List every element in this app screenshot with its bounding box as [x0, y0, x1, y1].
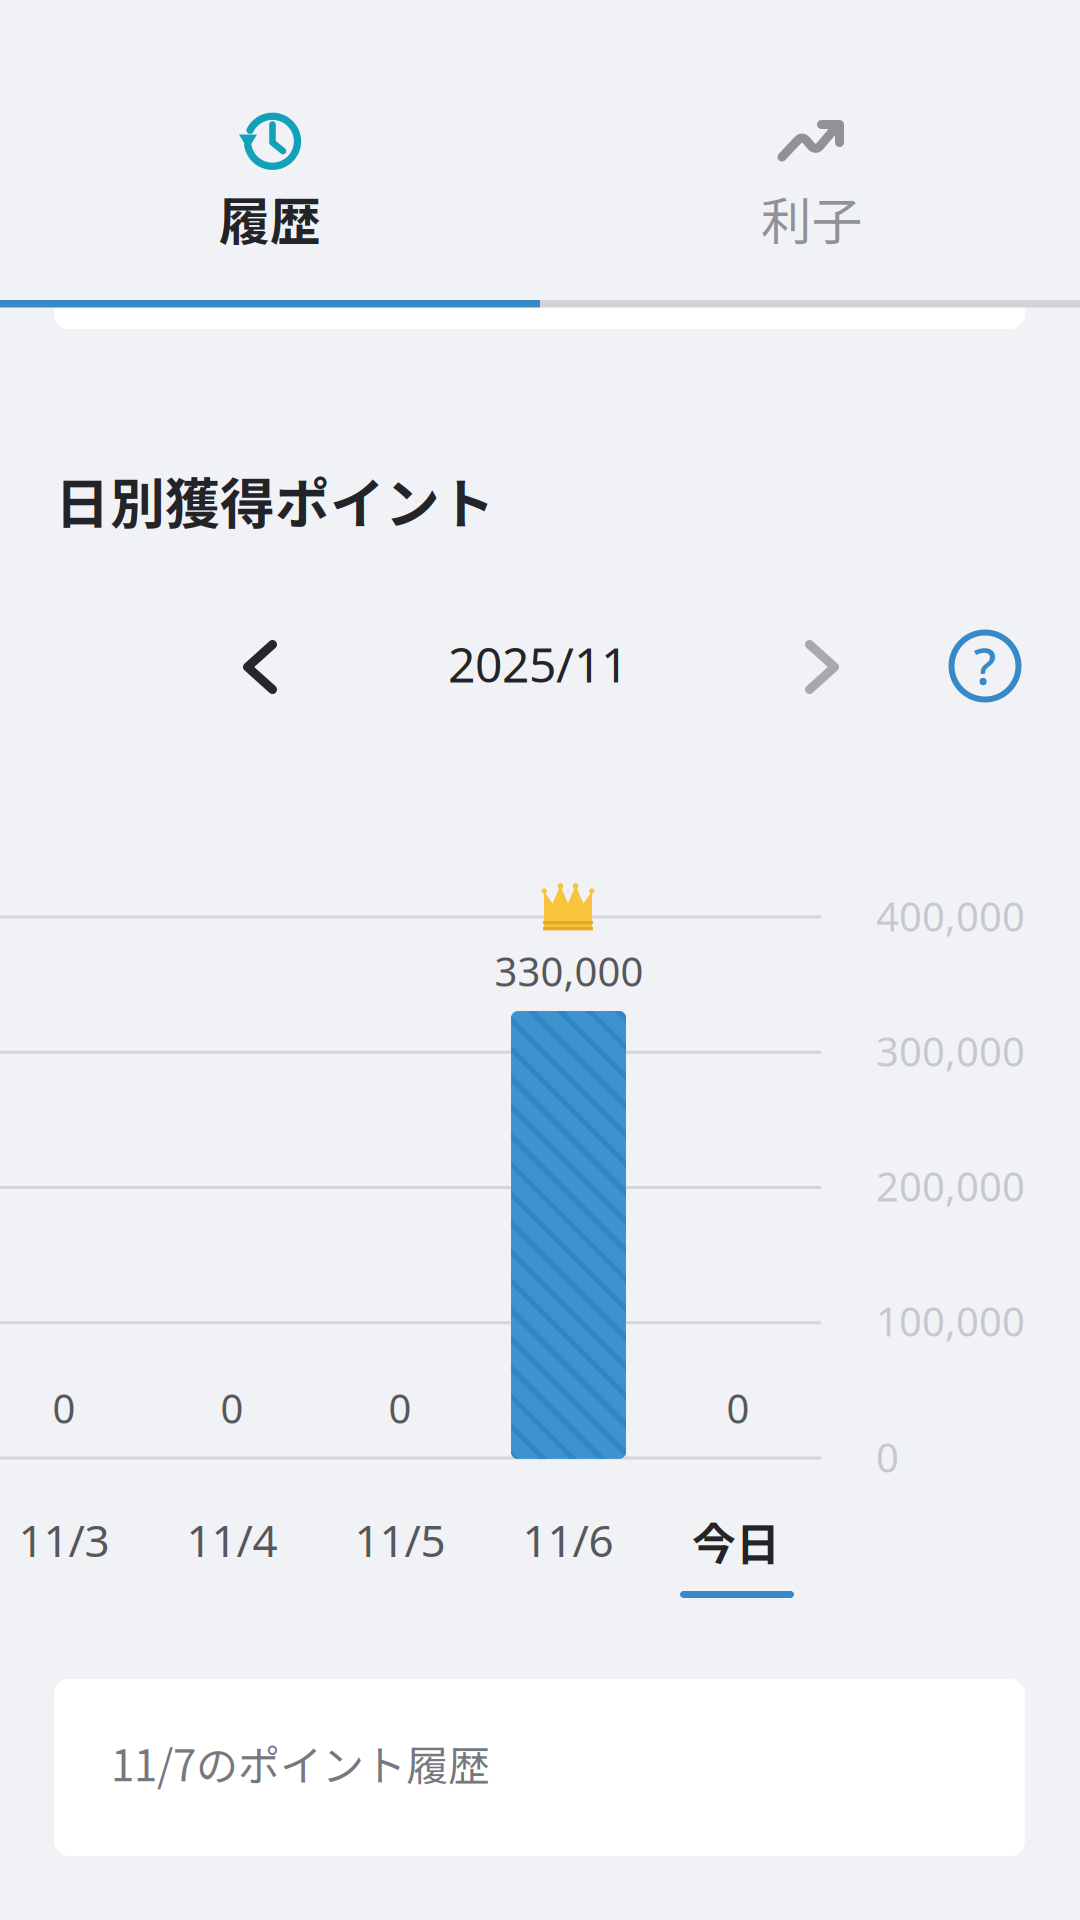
button[interactable]: 利子: [540, 0, 1080, 300]
staticText: 今日: [692, 1509, 780, 1573]
button[interactable]: 11/3: [0, 1495, 148, 1585]
button[interactable]: 履歴: [0, 0, 540, 300]
staticText: 11/4: [186, 1511, 277, 1569]
button[interactable]: 11/4: [148, 1495, 316, 1585]
staticText: 11/5: [354, 1511, 445, 1569]
staticText: 日別獲得ポイント: [55, 460, 495, 540]
staticText: 11/6: [522, 1511, 613, 1569]
staticText: 2025/11: [448, 632, 628, 696]
staticText: 0: [220, 1381, 243, 1434]
button[interactable]: Next month: [762, 612, 882, 722]
staticText: 11/3: [18, 1511, 109, 1569]
staticText: 履歴: [219, 181, 321, 255]
staticText: 11/7のポイント履歴: [111, 1733, 490, 1793]
button[interactable]: 11/6: [484, 1495, 652, 1585]
staticText: 400,000: [876, 889, 1025, 942]
staticText: 200,000: [876, 1159, 1025, 1212]
staticText: 0: [388, 1381, 411, 1434]
button[interactable]: 11/5: [316, 1495, 484, 1585]
button[interactable]: 今日: [652, 1506, 820, 1604]
button[interactable]: Help: [930, 611, 1040, 721]
staticText: 利子: [761, 181, 863, 255]
staticText: 0: [52, 1381, 75, 1434]
staticText: 0: [876, 1430, 899, 1483]
staticText: 0: [726, 1381, 749, 1434]
button[interactable]: Previous month: [200, 612, 320, 722]
staticText: ?: [973, 631, 996, 699]
staticText: 330,000: [494, 944, 643, 997]
staticText: 300,000: [876, 1024, 1025, 1077]
staticText: 100,000: [876, 1294, 1025, 1347]
button[interactable]: 11/7のポイント履歴: [54, 1679, 1025, 1856]
